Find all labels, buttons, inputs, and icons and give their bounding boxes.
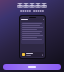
button[interactable] <box>21 52 44 57</box>
button[interactable] <box>21 22 44 44</box>
button[interactable] <box>3 64 61 70</box>
